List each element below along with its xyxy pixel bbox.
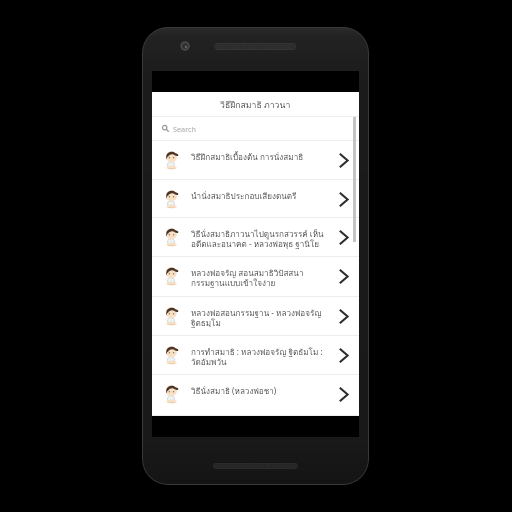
other: Open item — [337, 306, 353, 326]
other: Open item — [337, 266, 353, 286]
button[interactable]: นำนั่งสมาธิประกอบเสียงดนตรี — [152, 180, 359, 218]
staticText: นำนั่งสมาธิประกอบเสียงดนตรี — [191, 190, 297, 203]
button[interactable]: วิธีนั่งสมาธิ (หลวงพ่อชา) — [152, 375, 359, 416]
other: Open item — [337, 345, 353, 365]
other: Open item — [337, 384, 353, 404]
staticText: วิธีนั่งสมาธิ (หลวงพ่อชา) — [191, 385, 277, 398]
staticText: ฐิตธมฺโม — [191, 317, 221, 330]
other: Open item — [337, 227, 353, 247]
staticText: วิธีนั่งสมาธิภาวนาไปดูนรกสวรรค์ เห็น — [191, 228, 324, 241]
staticText: วิธีฝึกสมาธิเบื้องต้น การนั่งสมาธิ — [191, 151, 304, 164]
other: Open item — [337, 150, 353, 170]
staticText: หลวงพ่อสอนกรรมฐาน - หลวงพ่อจรัญ — [191, 307, 322, 320]
staticText: หลวงพ่อจรัญ สอนสมาธิวิปัสสนา — [191, 267, 304, 280]
other: Open item — [337, 189, 353, 209]
staticText: การทำสมาธิ : หลวงพ่อจรัญ ฐิตธัมโม : — [191, 346, 323, 359]
button[interactable]: วิธีฝึกสมาธิเบื้องต้น การนั่งสมาธิ — [152, 141, 359, 180]
button[interactable]: การทำสมาธิ : หลวงพ่อจรัญ ฐิตธัมโม : — [152, 336, 359, 375]
staticText: อดีตและอนาคต - หลวงพ่อพุธ ฐานิโย — [191, 238, 320, 251]
button[interactable]: Search — [152, 117, 359, 140]
button[interactable]: วิธีนั่งสมาธิภาวนาไปดูนรกสวรรค์ เห็น — [152, 218, 359, 257]
staticText: วัดอัมพวัน — [191, 356, 227, 369]
staticText: Search — [173, 124, 197, 134]
staticText: กรรมฐานแบบเข้าใจง่าย — [191, 277, 276, 290]
other: Front camera — [180, 41, 190, 51]
button[interactable]: หลวงพ่อจรัญ สอนสมาธิวิปัสสนา — [152, 257, 359, 297]
staticText: วิธีฝึกสมาธิ ภาวนา — [220, 98, 291, 112]
button[interactable]: หลวงพ่อสอนกรรมฐาน - หลวงพ่อจรัญ — [152, 297, 359, 336]
